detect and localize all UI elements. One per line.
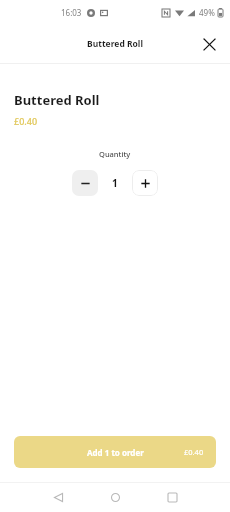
button[interactable]: Close: [196, 31, 222, 57]
staticText: Add 1 to order: [87, 447, 144, 458]
staticText: 1: [112, 176, 118, 190]
button[interactable]: Add 1 to order: [14, 436, 216, 468]
staticText: Buttered Roll: [14, 91, 100, 109]
staticText: 49%: [199, 7, 215, 18]
button[interactable]: Increase quantity: [132, 170, 158, 196]
button[interactable]: Decrease quantity: [72, 170, 98, 196]
staticText: Quantity: [99, 149, 131, 159]
staticText: £0.40: [184, 447, 204, 457]
staticText: Buttered Roll: [87, 38, 143, 50]
button[interactable]: Recent apps: [155, 483, 189, 512]
button[interactable]: Back: [41, 483, 75, 512]
staticText: 16:03: [61, 7, 82, 18]
staticText: £0.40: [14, 115, 38, 127]
button[interactable]: Home: [98, 483, 132, 512]
